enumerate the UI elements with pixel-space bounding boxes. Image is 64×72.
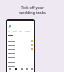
button[interactable] (8, 47, 33, 51)
button[interactable]: Vendors (24, 66, 29, 72)
button[interactable] (8, 39, 33, 43)
button[interactable] (8, 43, 33, 47)
button[interactable] (8, 55, 33, 59)
staticText: wedding tasks (19, 10, 46, 15)
button[interactable]: Home (7, 66, 13, 72)
button[interactable] (8, 60, 33, 64)
button[interactable]: Profile (29, 66, 34, 72)
button[interactable] (8, 51, 33, 55)
button[interactable] (8, 64, 33, 68)
button[interactable]: Budget (19, 66, 24, 72)
button[interactable]: Checklist (13, 66, 19, 72)
staticText: Tick off your (21, 5, 44, 10)
